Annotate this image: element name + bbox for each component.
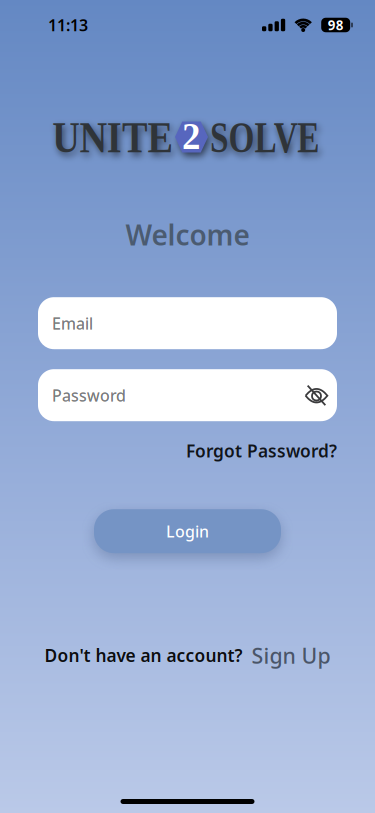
staticText: 11:13 [48, 14, 88, 36]
staticText: 98 [328, 16, 344, 34]
staticText: Forgot Password? [186, 439, 337, 462]
staticText: Don't have an account? [44, 644, 242, 667]
staticText: Login [166, 521, 209, 542]
staticText: 2 [182, 116, 201, 157]
staticText: Password [52, 385, 126, 406]
staticText: Email [52, 313, 93, 334]
staticText: Welcome [125, 216, 249, 253]
button[interactable]: Sign Up [251, 641, 330, 669]
textField[interactable]: Password [52, 385, 337, 406]
button[interactable]: Login [94, 509, 281, 553]
staticText: SOLVE [210, 112, 358, 162]
staticText: Sign Up [251, 641, 330, 669]
staticText: Email [52, 313, 93, 334]
staticText: Password [52, 385, 126, 406]
staticText: UNITE [31, 112, 173, 162]
button[interactable]: Show password [296, 375, 337, 416]
textField[interactable]: Email [52, 313, 337, 334]
button[interactable]: Forgot Password? [186, 439, 337, 462]
